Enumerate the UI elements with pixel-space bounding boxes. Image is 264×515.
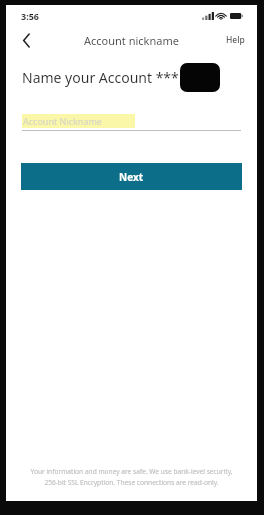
button[interactable]: Account Nickname — [22, 114, 241, 131]
button[interactable]: Back — [14, 28, 38, 52]
staticText: Account Nickname — [23, 115, 102, 127]
staticText: 3:56 — [21, 10, 39, 22]
staticText: 256-bit SSL Encryption. These connection… — [44, 478, 219, 487]
staticText: Next — [119, 170, 144, 184]
button[interactable]: Next — [21, 163, 242, 190]
staticText: Help — [226, 34, 245, 46]
staticText: Your information and money are safe. We … — [30, 467, 233, 476]
button[interactable]: Help — [222, 30, 249, 50]
staticText: Account nickname — [84, 33, 179, 48]
staticText: Name your Account *** — [22, 68, 179, 87]
